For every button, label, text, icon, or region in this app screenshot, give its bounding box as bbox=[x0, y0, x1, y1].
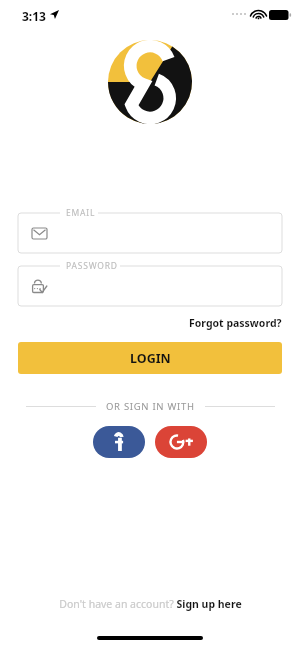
button[interactable]: PASSWORD bbox=[18, 266, 282, 306]
button[interactable]: LOGIN bbox=[18, 342, 282, 374]
button[interactable]: EMAIL bbox=[18, 213, 282, 253]
button[interactable]: Sign in with Google bbox=[155, 426, 207, 458]
staticText: LOGIN bbox=[130, 350, 171, 367]
button[interactable]: Don't have an account? Sign up here bbox=[0, 595, 300, 613]
staticText: 3:13 bbox=[22, 8, 46, 24]
button[interactable]: Sign in with Facebook bbox=[93, 426, 145, 458]
staticText: PASSWORD bbox=[66, 260, 118, 272]
button[interactable]: Forgot password? bbox=[180, 313, 282, 333]
staticText: OR SIGN IN WITH bbox=[106, 400, 195, 413]
staticText: Don't have an account? Sign up here bbox=[59, 597, 242, 611]
staticText: EMAIL bbox=[66, 207, 96, 219]
staticText: Forgot password? bbox=[189, 316, 282, 330]
